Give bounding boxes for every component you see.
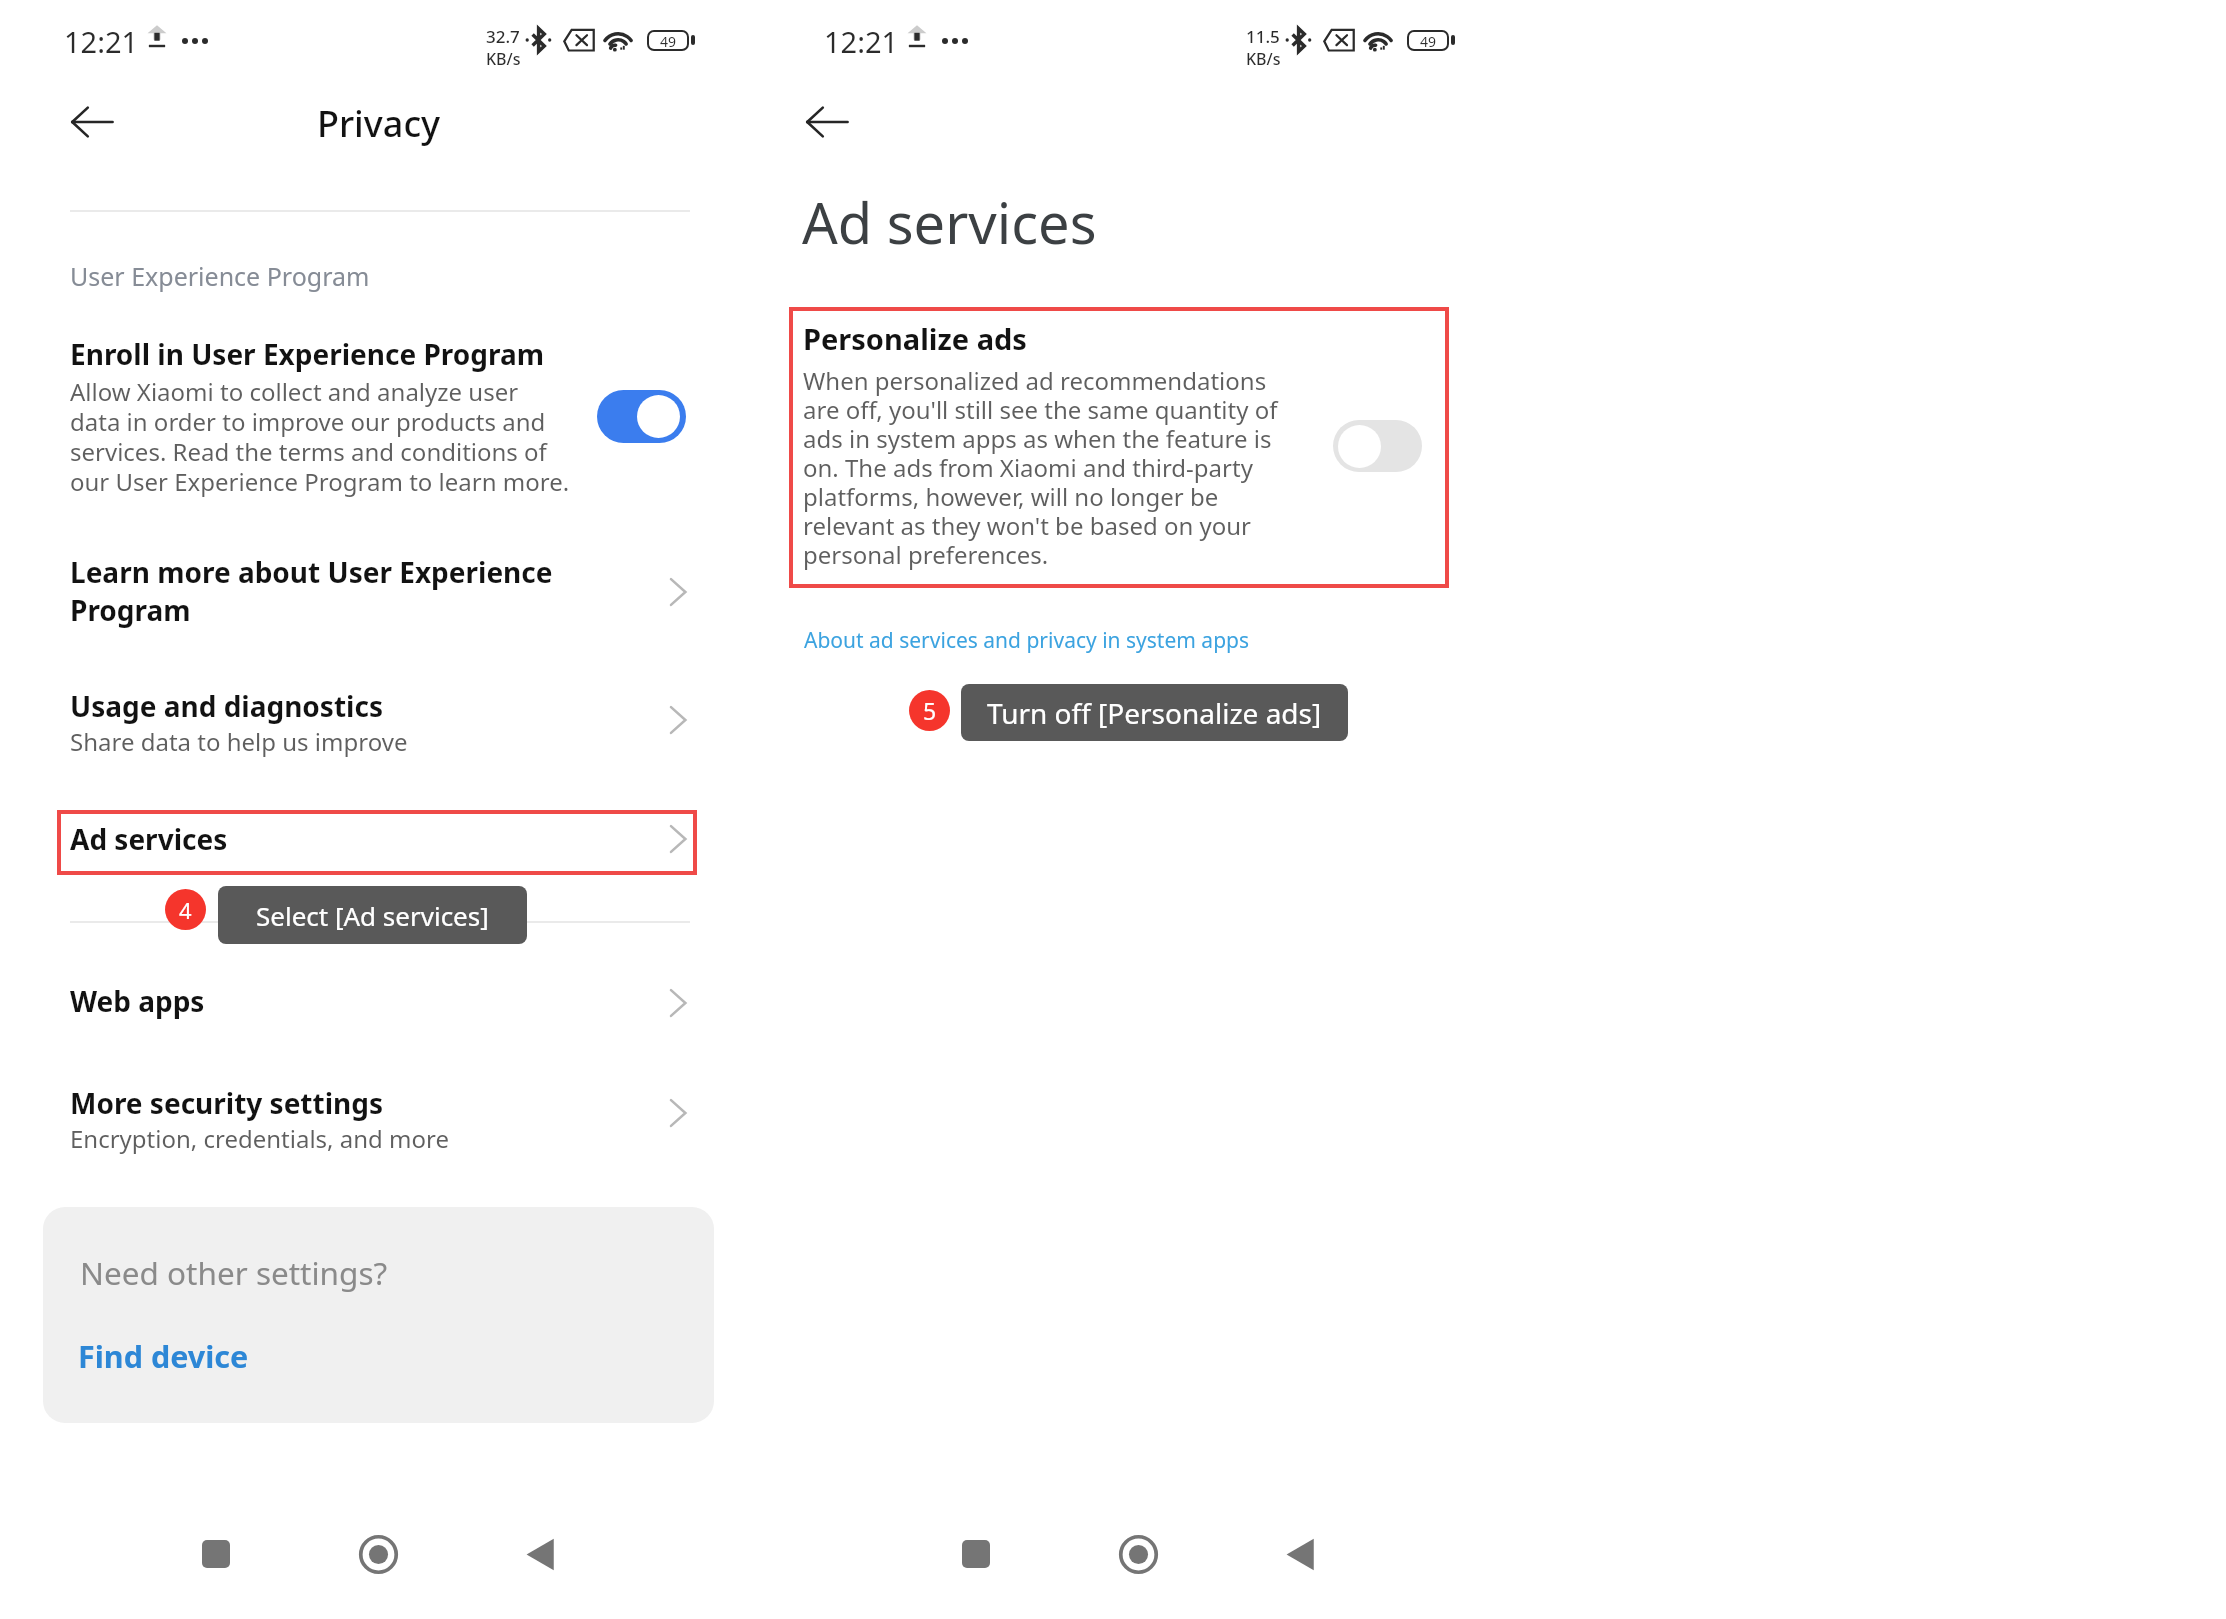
- staticText: Find device: [78, 1335, 249, 1377]
- staticText: 32.7: [486, 25, 520, 48]
- staticText: KB/s: [486, 48, 521, 70]
- button[interactable]: Back: [806, 106, 848, 138]
- staticText: Share data to help us improve: [70, 725, 408, 758]
- staticText: 12:21: [824, 22, 899, 61]
- button[interactable]: Back: [71, 106, 113, 138]
- staticText: Ad services: [70, 820, 228, 858]
- staticText: Web apps: [70, 982, 205, 1020]
- staticText: Allow Xiaomi to collect and analyze user…: [70, 375, 570, 498]
- staticText: Need other settings?: [80, 1251, 388, 1294]
- button[interactable]: Enroll in User Experience Program toggle…: [597, 390, 686, 443]
- staticText: Encryption, credentials, and more: [70, 1122, 450, 1155]
- staticText: 5: [923, 695, 937, 726]
- staticText: Ad services: [802, 184, 1097, 260]
- staticText: Enroll in User Experience Program: [70, 335, 544, 373]
- button[interactable]: Recent apps: [962, 1540, 990, 1568]
- staticText: 49: [660, 32, 677, 49]
- staticText: 12:21: [64, 22, 139, 61]
- staticText: Privacy: [6, 99, 751, 148]
- button[interactable]: Learn more about User Experience Program: [70, 553, 690, 658]
- staticText: Usage and diagnostics: [70, 687, 383, 725]
- button[interactable]: Back: [526, 1538, 554, 1571]
- button[interactable]: Web apps: [70, 975, 690, 1045]
- staticText: Select [Ad services]: [256, 898, 489, 933]
- button[interactable]: More security settings: [70, 1084, 690, 1179]
- staticText: 49: [1420, 32, 1437, 49]
- staticText: User Experience Program: [70, 259, 370, 293]
- staticText: Learn more about User Experience Program: [70, 553, 570, 629]
- button[interactable]: Find device: [78, 1335, 249, 1377]
- button[interactable]: Usage and diagnostics: [70, 687, 690, 777]
- staticText: 11.5: [1246, 25, 1280, 48]
- staticText: About ad services and privacy in system …: [804, 626, 1250, 655]
- staticText: More security settings: [70, 1084, 383, 1122]
- staticText: 4: [179, 895, 192, 925]
- staticText: Personalize ads: [803, 319, 1027, 358]
- button[interactable]: Enroll in User Experience Program: [70, 335, 690, 535]
- button[interactable]: Personalize ads toggle, off: [1333, 420, 1422, 472]
- button[interactable]: Ad services: [57, 810, 697, 875]
- button[interactable]: About ad services and privacy in system …: [804, 626, 1250, 655]
- staticText: Turn off [Personalize ads]: [987, 694, 1322, 732]
- staticText: KB/s: [1246, 48, 1281, 70]
- button[interactable]: Personalize ads: [789, 307, 1449, 588]
- button[interactable]: Back: [1286, 1538, 1314, 1571]
- button[interactable]: Home: [1119, 1535, 1158, 1574]
- button[interactable]: Recent apps: [202, 1540, 230, 1568]
- staticText: When personalized ad recommendations are…: [803, 364, 1305, 571]
- button[interactable]: Home: [359, 1535, 398, 1574]
